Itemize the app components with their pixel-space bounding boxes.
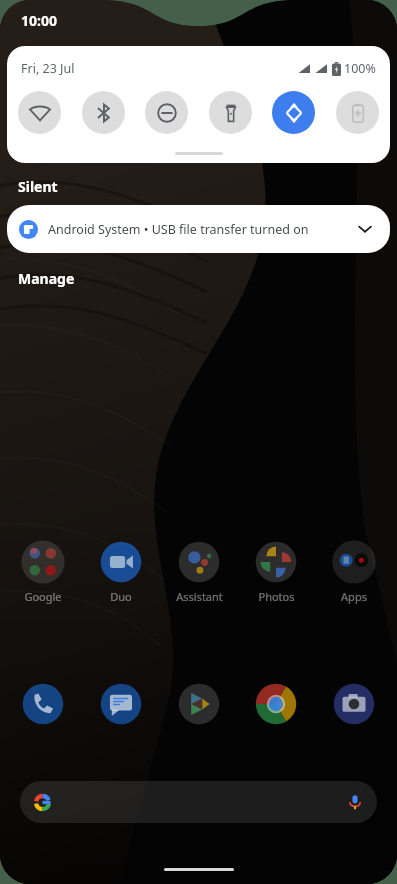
staticText: Android System • USB file transfer turne… [48,221,309,238]
staticText: Photos [258,589,295,604]
button[interactable]: Phone [10,681,76,727]
button[interactable]: Search [20,781,377,823]
staticText: Google [24,589,62,604]
button[interactable]: Google [10,539,76,604]
staticText: 10:00 [21,11,57,30]
staticText: Duo [110,589,132,604]
staticText: Fri, 23 Jul [21,60,75,77]
button[interactable]: Assistant [166,539,232,604]
button[interactable]: Messages [88,681,154,727]
button[interactable]: Play Store [166,681,232,727]
staticText: Manage [18,269,75,288]
button[interactable]: Wi-Fi [18,91,61,134]
button[interactable]: Do Not Disturb [145,91,188,134]
button[interactable]: Camera [321,681,387,727]
button[interactable]: Photos [243,539,309,604]
staticText: Silent [18,177,58,196]
staticText: Apps [341,589,367,604]
button[interactable]: Auto-rotate [272,91,315,134]
staticText: 100% [344,60,376,77]
button[interactable]: Apps [321,539,387,604]
button[interactable]: Flashlight [209,91,252,134]
button[interactable]: Expand notification [352,216,378,242]
button[interactable]: Chrome [243,681,309,727]
button[interactable]: Android System • USB file transfer turne… [7,205,390,253]
staticText: Assistant [176,589,223,604]
button[interactable]: Duo [88,539,154,604]
button[interactable]: Battery Saver [336,91,379,134]
button[interactable]: Bluetooth [82,91,125,134]
